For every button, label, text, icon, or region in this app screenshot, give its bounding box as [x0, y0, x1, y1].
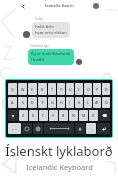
staticText: Ég er á skrifstofunni: [31, 51, 71, 57]
button[interactable]: A: [8, 97, 17, 108]
staticText: 2 minutes ago: [30, 44, 49, 48]
button[interactable]: Enter: [97, 123, 110, 134]
button[interactable]: Q: [8, 83, 17, 95]
button[interactable]: Z: [19, 110, 28, 121]
staticText: I: [78, 87, 80, 92]
button[interactable]: Back: [19, 2, 27, 10]
button[interactable]: V: [49, 110, 58, 121]
button[interactable]: I: [75, 83, 83, 95]
button[interactable]: Y: [57, 83, 65, 95]
staticText: Q: [11, 87, 14, 92]
button[interactable]: Voice input: [75, 123, 85, 134]
staticText: Isabella Katrín: [45, 3, 74, 9]
button[interactable]: F: [38, 97, 47, 108]
staticText: E: [31, 87, 34, 92]
staticText: halló Arlo: [35, 24, 54, 30]
staticText: ?123: [12, 127, 18, 130]
button[interactable]: Change language: [33, 123, 43, 134]
staticText: L: [87, 100, 89, 105]
staticText: Z: [22, 113, 25, 118]
staticText: Today: [35, 17, 43, 21]
button[interactable]: Æ: [93, 97, 101, 108]
staticText: Þ: [92, 113, 95, 118]
button[interactable]: Þ: [89, 110, 98, 121]
button[interactable]: J: [66, 97, 74, 108]
button[interactable]: M: [79, 110, 88, 121]
button[interactable]: Emoji: [22, 123, 32, 134]
staticText: U: [69, 87, 72, 92]
button[interactable]: H: [57, 97, 65, 108]
button[interactable]: O: [84, 83, 92, 95]
button[interactable]: L: [84, 97, 92, 108]
button[interactable]: P: [93, 83, 101, 95]
button[interactable]: Space: [44, 123, 74, 134]
staticText: hvar ertu elskan: [35, 30, 67, 36]
staticText: .: [91, 127, 92, 131]
staticText: W: [21, 87, 25, 92]
staticText: A: [11, 100, 14, 105]
staticText: K: [78, 100, 81, 105]
button[interactable]: R: [38, 83, 47, 95]
staticText: Ð: [105, 87, 108, 92]
staticText: Icelandic Keyboard: [26, 162, 93, 172]
button[interactable]: U: [66, 83, 74, 95]
button[interactable]: ?123: [8, 123, 21, 134]
staticText: D: [31, 100, 34, 105]
staticText: R: [41, 87, 44, 92]
button[interactable]: E: [28, 83, 37, 95]
staticText: S: [22, 100, 24, 105]
button[interactable]: Ð: [102, 83, 110, 95]
staticText: J: [69, 100, 71, 105]
button[interactable]: S: [18, 97, 27, 108]
staticText: G: [51, 100, 54, 105]
button[interactable]: Profile: [93, 3, 99, 9]
staticText: V: [52, 113, 55, 118]
staticText: T: [51, 87, 54, 92]
staticText: P: [96, 87, 99, 92]
button[interactable]: D: [28, 97, 37, 108]
button[interactable]: X: [29, 110, 38, 121]
staticText: X: [32, 113, 35, 118]
button[interactable]: Backspace: [99, 110, 110, 121]
button[interactable]: B: [59, 110, 68, 121]
staticText: N: [72, 113, 75, 118]
staticText: H: [60, 100, 63, 105]
button[interactable]: Shift: [8, 110, 18, 121]
button[interactable]: Ö: [102, 97, 110, 108]
staticText: M: [82, 113, 86, 118]
staticText: Íslenskt lyklaborð: [5, 142, 113, 160]
staticText: Y: [60, 87, 63, 92]
button[interactable]: C: [39, 110, 48, 121]
button[interactable]: K: [75, 97, 83, 108]
staticText: Æ: [95, 100, 99, 105]
staticText: Ö: [105, 100, 108, 105]
staticText: O: [87, 87, 90, 92]
button[interactable]: G: [48, 97, 56, 108]
staticText: C: [42, 113, 45, 118]
button[interactable]: N: [69, 110, 78, 121]
button[interactable]: W: [18, 83, 27, 95]
button[interactable]: T: [48, 83, 56, 95]
staticText: B: [62, 113, 65, 118]
button[interactable]: .: [86, 123, 96, 134]
staticText: í kvöld.: [31, 57, 45, 63]
staticText: F: [42, 100, 44, 105]
